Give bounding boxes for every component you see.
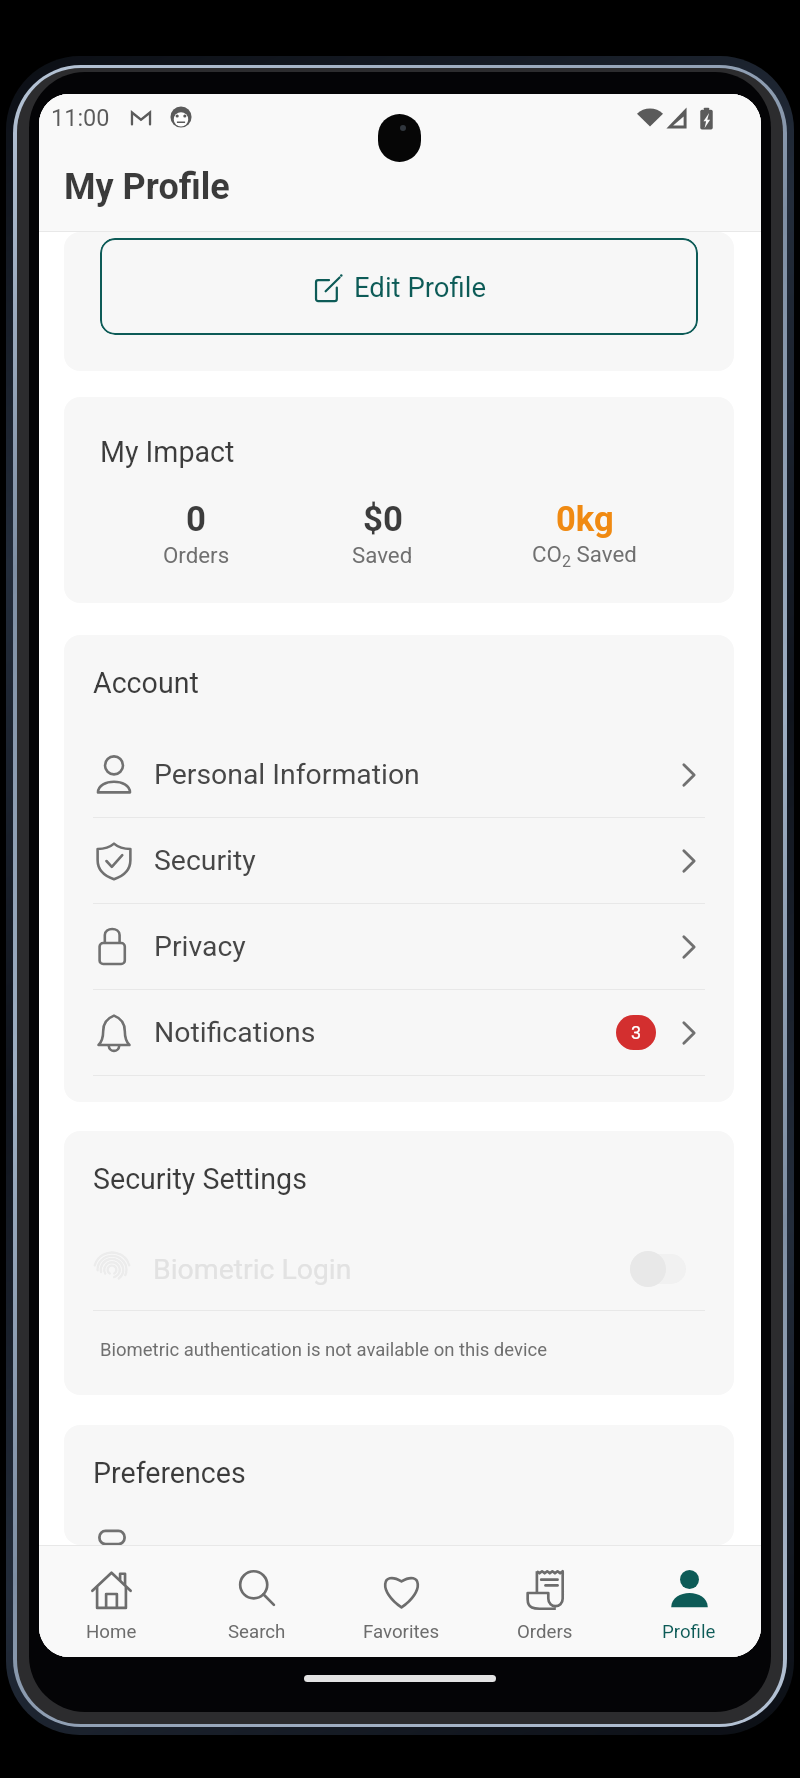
- button[interactable]: Orders: [473, 1546, 617, 1657]
- staticText: Search: [228, 1621, 286, 1643]
- staticText: 0kg: [556, 499, 614, 539]
- staticText: CO: [532, 541, 562, 567]
- button[interactable]: Personal Information: [64, 732, 734, 818]
- staticText: Edit Profile: [354, 271, 486, 303]
- staticText: 2: [562, 552, 571, 571]
- button[interactable]: Privacy: [64, 904, 734, 990]
- staticText: My Profile: [64, 166, 230, 208]
- staticText: Notifications: [154, 1016, 316, 1049]
- staticText: 11:00: [51, 104, 110, 132]
- button[interactable]: Home: [39, 1546, 184, 1657]
- staticText: Security: [154, 844, 256, 877]
- staticText: Preferences: [93, 1456, 246, 1490]
- button[interactable]: Security: [64, 818, 734, 904]
- staticText: Biometric authentication is not availabl…: [100, 1339, 547, 1361]
- staticText: $0: [363, 499, 403, 540]
- staticText: Orders: [163, 542, 230, 568]
- staticText: Personal Information: [154, 758, 420, 791]
- staticText: Privacy: [154, 930, 246, 963]
- staticText: Biometric Login: [153, 1253, 352, 1286]
- staticText: 0: [186, 499, 206, 540]
- button[interactable]: Notifications: [64, 990, 734, 1076]
- staticText: Profile: [662, 1621, 716, 1643]
- staticText: Account: [93, 666, 199, 700]
- staticText: Favorites: [363, 1621, 440, 1643]
- button[interactable]: Search: [184, 1546, 329, 1657]
- staticText: Security Settings: [93, 1162, 307, 1196]
- button[interactable]: Profile: [617, 1546, 761, 1657]
- staticText: Saved: [352, 542, 413, 568]
- staticText: Orders: [517, 1621, 573, 1643]
- button[interactable]: Edit Profile: [100, 238, 698, 335]
- staticText: 3: [631, 1022, 642, 1043]
- staticText: Saved: [571, 541, 637, 567]
- staticText: Home: [86, 1621, 137, 1643]
- staticText: My Impact: [100, 435, 235, 469]
- button[interactable]: Favorites: [329, 1546, 473, 1657]
